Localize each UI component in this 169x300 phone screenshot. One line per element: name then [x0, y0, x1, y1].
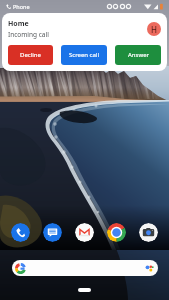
staticText: Screen call — [69, 51, 99, 59]
staticText: Incoming call — [8, 30, 49, 39]
other: Home — [78, 288, 91, 292]
button[interactable]: Messages — [43, 223, 62, 242]
button[interactable]: Decline — [8, 45, 53, 65]
button[interactable]: Gmail — [75, 223, 94, 242]
staticText: Answer — [128, 51, 149, 59]
staticText: Decline — [20, 51, 41, 59]
button[interactable]: Chrome — [107, 223, 126, 242]
staticText: Home — [8, 19, 29, 29]
button[interactable]: Home — [2, 13, 167, 71]
button[interactable]: Google — [12, 260, 158, 276]
other: Assistant — [145, 263, 155, 273]
staticText: H — [151, 24, 157, 35]
button[interactable]: Camera — [139, 223, 158, 242]
button[interactable]: Phone — [11, 223, 30, 242]
other: Google — [15, 263, 26, 274]
button[interactable]: Screen call — [61, 45, 107, 65]
button[interactable]: Answer — [115, 45, 161, 65]
staticText: Phone — [13, 3, 30, 10]
